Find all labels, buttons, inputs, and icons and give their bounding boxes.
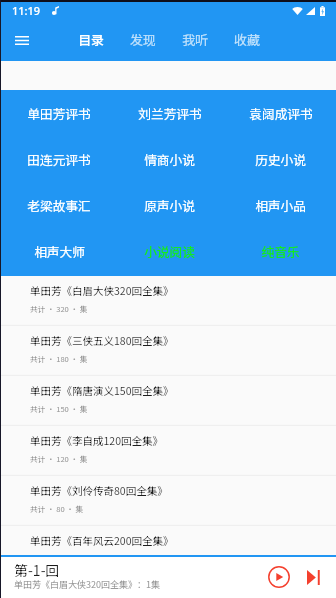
button[interactable]: 单田芳评书 <box>4 90 114 136</box>
staticText: 情商小说 <box>144 150 195 168</box>
staticText: 共计 · 180 · 集 <box>30 353 88 364</box>
staticText: 发现 <box>130 30 157 49</box>
staticText: 袁阔成评书 <box>249 104 313 122</box>
button[interactable]: 情商小说 <box>114 136 225 182</box>
button[interactable]: 单田芳《刘伶传奇80回全集》 <box>0 476 336 526</box>
button[interactable]: 单田芳《三侠五义180回全集》 <box>0 326 336 376</box>
button[interactable]: 单田芳《隋唐演义150回全集》 <box>0 376 336 426</box>
staticText: 单田芳《李自成120回全集》 <box>30 433 163 448</box>
button[interactable]: 单田芳《李自成120回全集》 <box>0 426 336 476</box>
staticText: 共计 · 80 · 集 <box>30 503 84 514</box>
button[interactable]: 相声小品 <box>225 182 336 228</box>
staticText: 单田芳《隋唐演义150回全集》 <box>30 383 174 398</box>
button[interactable]: Menu <box>7 25 37 55</box>
button[interactable]: 目录 <box>65 20 117 59</box>
staticText: 小说阅读 <box>144 242 195 260</box>
staticText: 单田芳《三侠五义180回全集》 <box>30 333 174 348</box>
staticText: 共计 · 320 · 集 <box>30 303 88 314</box>
button[interactable]: 刘兰芳评书 <box>114 90 225 136</box>
staticText: 单田芳评书 <box>27 104 91 122</box>
staticText: 老梁故事汇 <box>27 196 91 214</box>
staticText: 相声小品 <box>255 196 306 214</box>
staticText: 单田芳《百年风云200回全集》 <box>30 533 174 548</box>
staticText: 第-1-回 <box>14 560 60 580</box>
staticText: 刘兰芳评书 <box>138 104 202 122</box>
button[interactable]: 田连元评书 <box>4 136 114 182</box>
staticText: 共计 · 200 · 集 <box>30 553 88 564</box>
staticText: 11:19 <box>12 3 41 18</box>
staticText: 单田芳《刘伶传奇80回全集》 <box>30 483 168 498</box>
button[interactable]: 收藏 <box>221 20 273 59</box>
staticText: 目录 <box>78 30 105 49</box>
button[interactable]: Play <box>263 561 295 593</box>
button[interactable]: 老梁故事汇 <box>4 182 114 228</box>
staticText: 原声小说 <box>144 196 195 214</box>
button[interactable]: 原声小说 <box>114 182 225 228</box>
staticText: 收藏 <box>234 30 261 49</box>
staticText: 纯音乐 <box>261 242 300 260</box>
button[interactable]: 我听 <box>169 20 221 59</box>
button[interactable]: Next <box>297 561 329 593</box>
staticText: 共计 · 150 · 集 <box>30 403 88 414</box>
button[interactable]: 袁阔成评书 <box>225 90 336 136</box>
button[interactable]: 单田芳《乱世枭雄240回全集》 <box>0 576 336 598</box>
button[interactable]: 单田芳《百年风云200回全集》 <box>0 526 336 576</box>
button[interactable]: 历史小说 <box>225 136 336 182</box>
staticText: 历史小说 <box>255 150 306 168</box>
staticText: 田连元评书 <box>27 150 91 168</box>
staticText: 我听 <box>182 30 209 49</box>
button[interactable]: 小说阅读 <box>114 228 225 274</box>
button[interactable]: 纯音乐 <box>225 228 336 274</box>
staticText: 单田芳《白眉大侠320回全集》 <box>30 283 174 298</box>
button[interactable]: 单田芳《白眉大侠320回全集》 <box>0 276 336 326</box>
button[interactable]: 发现 <box>117 20 169 59</box>
staticText: 单田芳《乱世枭雄240回全集》 <box>30 583 174 598</box>
staticText: 单田芳《白眉大侠320回全集》：1集 <box>14 578 160 591</box>
staticText: 相声大师 <box>34 242 85 260</box>
button[interactable]: 相声大师 <box>4 228 114 274</box>
staticText: 共计 · 120 · 集 <box>30 453 88 464</box>
